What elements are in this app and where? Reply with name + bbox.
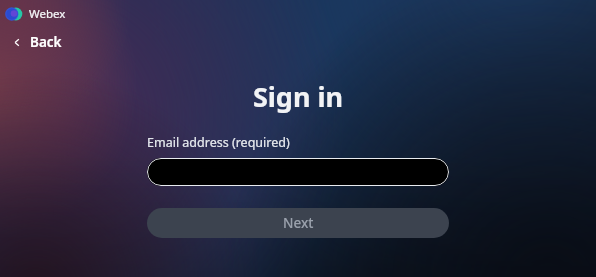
- button[interactable]: Next: [147, 208, 449, 238]
- button[interactable]: Email address input: [147, 158, 449, 186]
- staticText: Back: [30, 33, 62, 51]
- staticText: Sign in: [147, 78, 449, 115]
- staticText: Next: [283, 214, 314, 232]
- staticText: Email address (required): [147, 134, 290, 151]
- other: Webex logo: [6, 6, 22, 22]
- button[interactable]: Back: [8, 30, 66, 54]
- staticText: Webex: [29, 6, 66, 22]
